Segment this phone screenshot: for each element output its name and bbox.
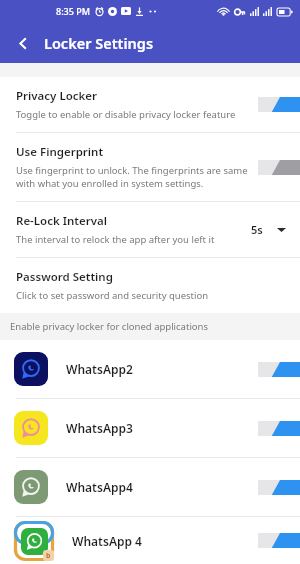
button[interactable]: Toggle on — [258, 533, 300, 548]
button[interactable]: Toggle on — [258, 362, 300, 377]
button[interactable]: WhatsApp2 — [0, 340, 300, 398]
button[interactable]: Password Setting — [0, 258, 300, 313]
staticText: Privacy Locker — [16, 88, 98, 104]
staticText: 5s — [251, 222, 263, 237]
button[interactable]: Re-Lock Interval — [0, 202, 300, 257]
button[interactable]: 5s — [251, 222, 300, 237]
button[interactable]: Toggle on — [258, 421, 300, 436]
staticText: WhatsApp4 — [66, 479, 133, 495]
staticText: WhatsApp3 — [66, 420, 133, 436]
button[interactable]: WhatsApp4 — [0, 458, 300, 516]
button[interactable]: Privacy Locker — [0, 77, 300, 132]
staticText: Use fingerprint to unlock. The fingerpri… — [16, 164, 248, 190]
staticText: WhatsApp 4 — [72, 533, 142, 549]
staticText: Password Setting — [16, 269, 113, 285]
staticText: b — [46, 551, 51, 561]
button[interactable]: Toggle on — [258, 480, 300, 495]
staticText: Locker Settings — [44, 33, 154, 53]
staticText: The interval to relock the app after you… — [16, 233, 215, 246]
button[interactable]: Toggle on — [258, 97, 300, 112]
button[interactable]: WhatsApp3 — [0, 399, 300, 457]
staticText: WhatsApp2 — [66, 361, 133, 377]
staticText: Re-Lock Interval — [16, 213, 107, 229]
button[interactable]: Toggle off — [258, 160, 300, 175]
button[interactable]: Use Fingerprint — [0, 133, 300, 201]
staticText: Use Fingerprint — [16, 144, 104, 160]
button[interactable]: b — [0, 517, 300, 564]
staticText: 8:35 PM — [56, 5, 90, 17]
staticText: Enable privacy locker for cloned applica… — [10, 320, 208, 333]
staticText: Toggle to enable or disable privacy lock… — [16, 108, 236, 121]
button[interactable]: Back — [10, 30, 36, 56]
staticText: Click to set password and security quest… — [16, 289, 209, 302]
